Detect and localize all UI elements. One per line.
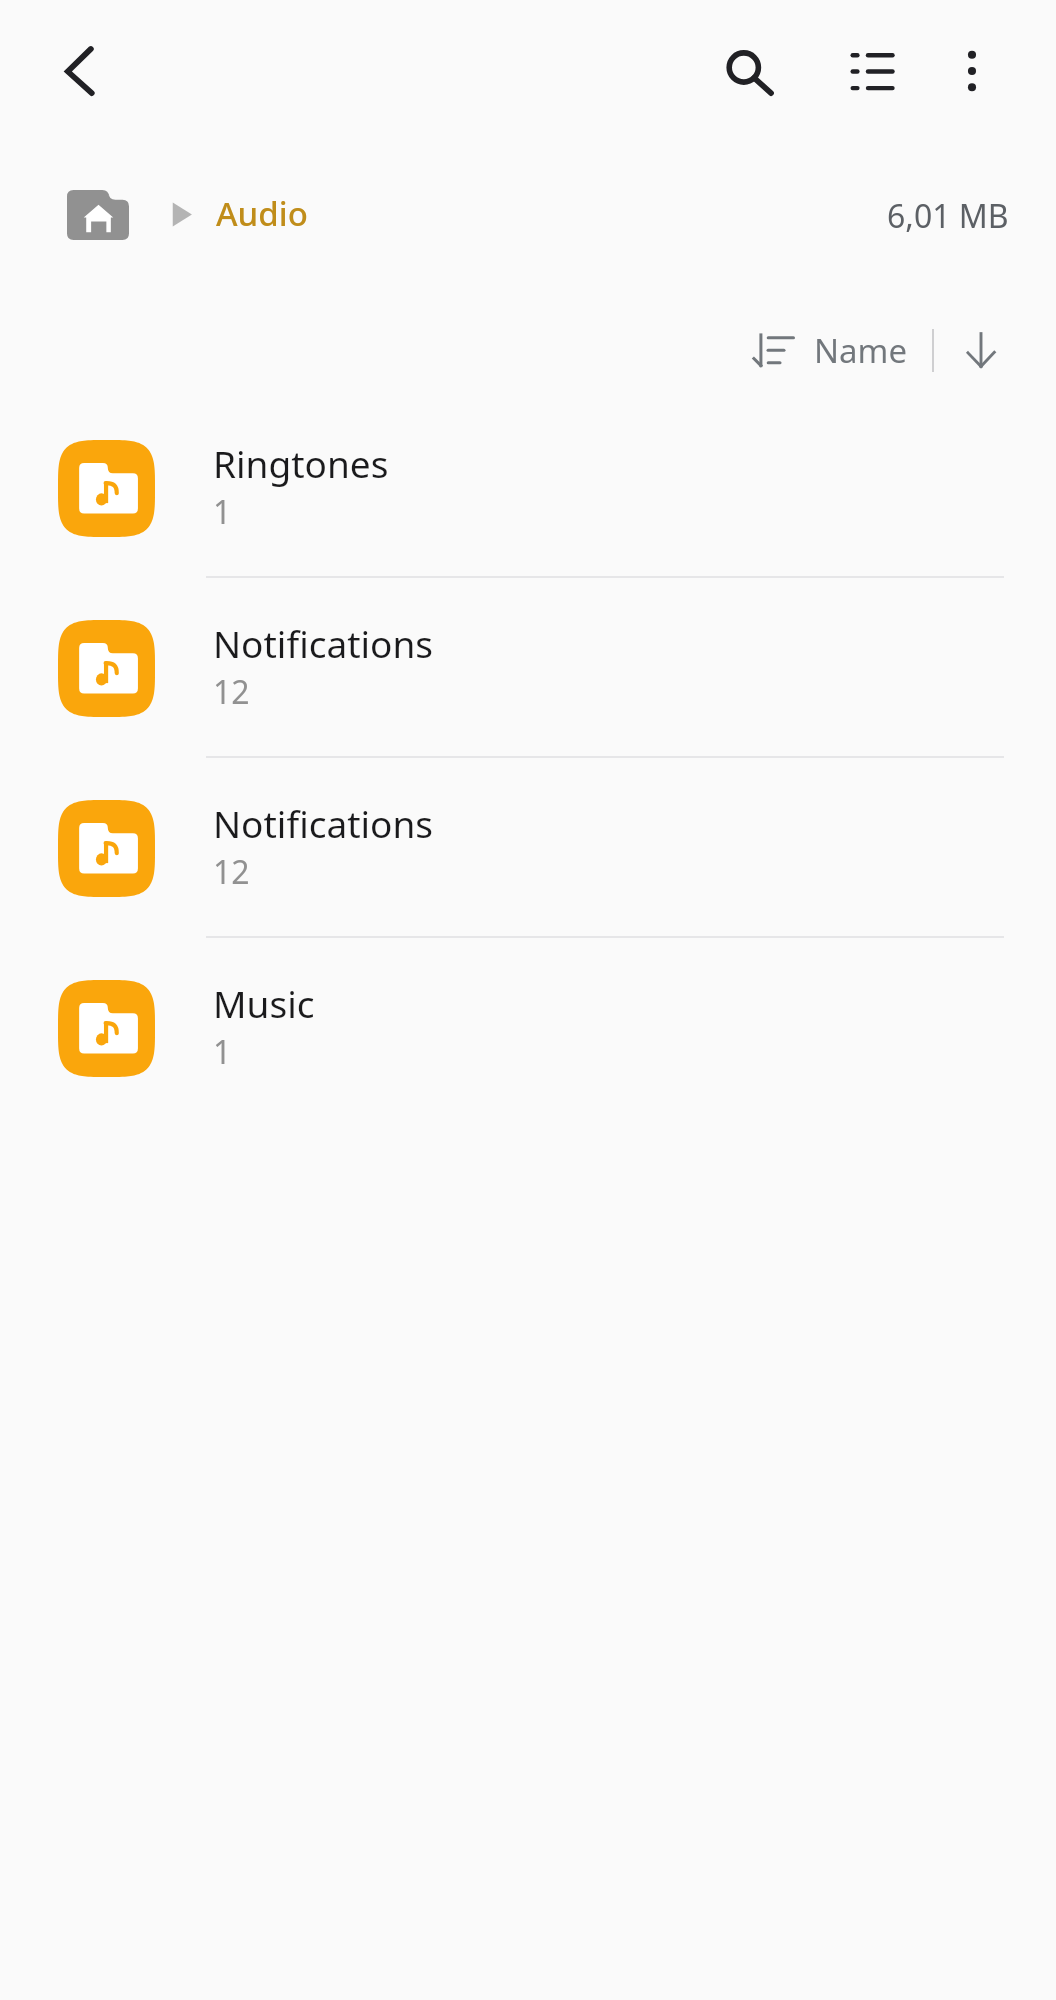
button[interactable]: Sort order (949, 318, 1013, 382)
staticText: Audio (216, 191, 308, 236)
staticText: Notifications (213, 618, 434, 668)
staticText: Ringtones (213, 438, 389, 488)
button[interactable]: Home folder (55, 178, 141, 252)
button[interactable]: Ringtones (0, 398, 1056, 578)
button[interactable]: Notifications (0, 578, 1056, 758)
button[interactable]: Notifications (0, 758, 1056, 938)
button[interactable]: Name (736, 318, 926, 382)
staticText: 12 (213, 850, 250, 894)
staticText: 1 (213, 1030, 232, 1074)
staticText: 6,01 MB (887, 194, 1009, 238)
button[interactable]: More options (924, 23, 1020, 119)
staticText: Notifications (213, 798, 434, 848)
button[interactable]: Change view (824, 23, 920, 119)
button[interactable]: Music (0, 938, 1056, 1118)
staticText: Name (814, 328, 908, 373)
button[interactable]: Search (700, 23, 796, 119)
staticText: 12 (213, 670, 250, 714)
button[interactable]: Audio (206, 182, 316, 246)
staticText: Music (213, 978, 315, 1028)
button[interactable]: Back (32, 23, 128, 119)
staticText: 1 (213, 490, 232, 534)
